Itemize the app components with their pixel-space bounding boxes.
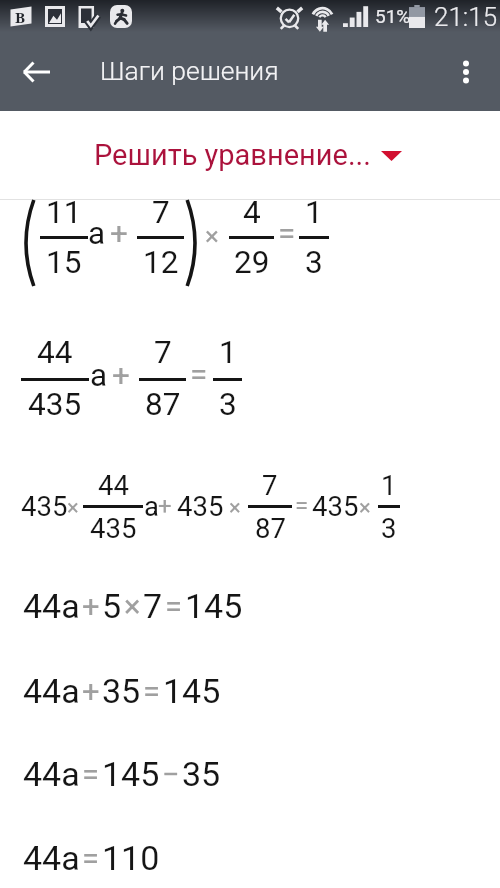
staticText: = [143, 673, 161, 709]
button[interactable]: Back [12, 48, 60, 96]
staticText: 44a [23, 671, 80, 711]
staticText: 1 [305, 194, 323, 231]
staticText: 145 [163, 671, 221, 711]
staticText: 5 [102, 586, 122, 626]
staticText: + [158, 492, 172, 520]
staticText: 35 [182, 754, 221, 794]
button[interactable]: More options [442, 48, 490, 96]
staticText: + [82, 588, 100, 624]
staticText: 21:15 [434, 2, 498, 32]
button[interactable]: Решить уравнение... [0, 111, 500, 199]
staticText: 44a [23, 586, 80, 626]
staticText: 11 [46, 194, 82, 231]
staticText: 145 [102, 754, 160, 794]
staticText: 7 [262, 469, 278, 501]
staticText: 1 [219, 334, 237, 371]
staticText: 7 [154, 334, 172, 371]
staticText: = [278, 215, 296, 252]
staticText: 3 [381, 512, 397, 544]
staticText: 44 [98, 469, 129, 501]
staticText: 145 [185, 586, 243, 626]
staticText: 44a [23, 754, 80, 794]
staticText: = [82, 840, 100, 876]
staticText: Шаги решения [100, 55, 279, 86]
staticText: 435 [90, 512, 137, 544]
staticText: = [190, 356, 208, 393]
staticText: 3 [305, 244, 323, 281]
staticText: × [67, 495, 79, 521]
staticText: × [124, 588, 141, 624]
staticText: + [82, 673, 100, 709]
staticText: + [112, 357, 130, 394]
staticText: 110 [102, 838, 160, 878]
staticText: 7 [152, 194, 170, 231]
staticText: 1 [381, 469, 397, 501]
staticText: 44 [37, 334, 73, 371]
staticText: − [162, 756, 180, 792]
staticText: 87 [255, 512, 286, 544]
staticText: + [110, 215, 128, 252]
staticText: × [205, 221, 219, 251]
staticText: 35 [102, 671, 141, 711]
staticText: = [295, 492, 309, 520]
staticText: a [144, 490, 159, 522]
staticText: a [90, 357, 108, 394]
staticText: 15 [46, 244, 82, 281]
staticText: × [229, 495, 241, 521]
staticText: 4 [243, 194, 261, 231]
staticText: 44a [23, 838, 80, 878]
staticText: a [88, 215, 106, 252]
staticText: 87 [145, 386, 181, 423]
staticText: 435 [177, 490, 224, 522]
staticText: 29 [234, 244, 270, 281]
staticText: B [15, 7, 26, 27]
staticText: 12 [143, 244, 179, 281]
staticText: 3 [219, 386, 237, 423]
staticText: 435 [21, 490, 68, 522]
staticText: 435 [28, 386, 82, 423]
staticText: = [82, 756, 100, 792]
staticText: 51% [375, 5, 411, 27]
staticText: = [165, 588, 183, 624]
staticText: 435 [312, 490, 359, 522]
staticText: Решить уравнение... [94, 138, 371, 172]
staticText: 7 [143, 586, 163, 626]
staticText: × [359, 495, 371, 521]
